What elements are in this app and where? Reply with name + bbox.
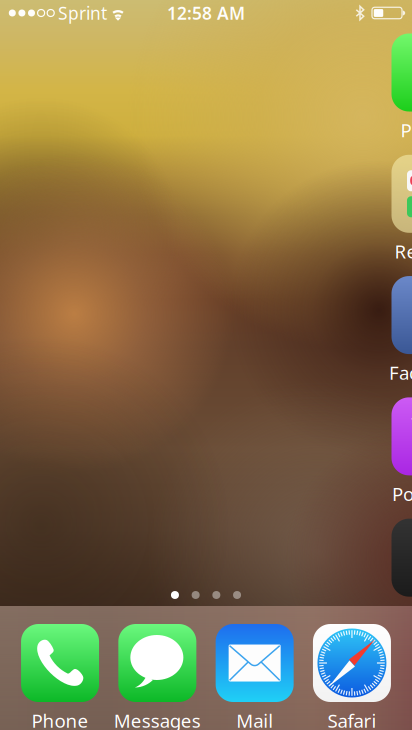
staticText: 12:58 AM — [167, 1, 245, 24]
staticText: Sprint — [58, 1, 107, 24]
staticText: Podcasts — [392, 481, 412, 506]
staticText: Messages — [114, 708, 201, 730]
button[interactable]: Phone — [12, 624, 109, 730]
staticText: Facebook — [389, 360, 412, 385]
staticText: People — [400, 117, 412, 142]
staticText: Safari — [327, 708, 376, 730]
staticText: Mail — [236, 708, 273, 730]
button[interactable]: People — [382, 33, 412, 142]
staticText: Chrome — [395, 603, 412, 627]
button[interactable]: Mail — [206, 624, 303, 730]
button[interactable]: Podcasts — [382, 397, 412, 506]
staticText: Phone — [32, 708, 89, 730]
button[interactable]: Reading — [382, 155, 412, 264]
button[interactable]: Chrome — [382, 519, 412, 627]
button[interactable]: f — [382, 276, 412, 385]
button[interactable]: Safari — [303, 624, 400, 730]
staticText: Reading — [394, 239, 412, 264]
button[interactable]: Messages — [109, 624, 206, 730]
